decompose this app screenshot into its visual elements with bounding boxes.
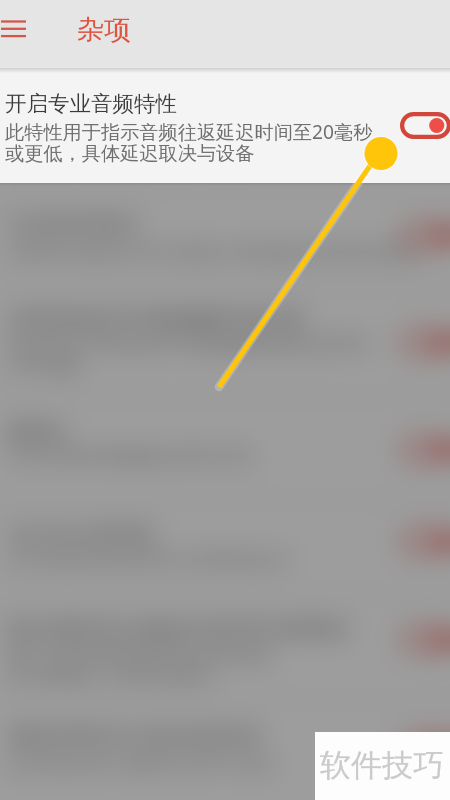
button[interactable]: Toggle [400, 113, 450, 140]
staticText: 软件技巧 [320, 746, 444, 785]
staticText: 显示当前屏幕刷新率的实时数值 并在屏幕左上角常驻显示 [5, 643, 274, 689]
button[interactable]: 开启专业音频特性 [0, 68, 450, 184]
button[interactable]: 摄像头 [0, 401, 450, 496]
button[interactable]: 强制启用GPU渲染加速特性 [0, 704, 450, 800]
staticText: 启用MIDI模式后可以通过USB连接支持MIDI设备 [5, 238, 419, 264]
button[interactable]: Toggle [400, 112, 450, 139]
staticText: 开启专业音频特性 [5, 90, 177, 117]
staticText: 开启专业音频特性 [5, 90, 177, 117]
button[interactable]: 显示刷新率以及触控采样率等参数值 [0, 599, 450, 696]
button[interactable]: Toggle [400, 436, 450, 463]
staticText: 此特性用于指示音频往返延迟时间至20毫秒 或更低，具体延迟取决与设备 [5, 118, 373, 166]
staticText: 摄像头 [5, 417, 70, 444]
button[interactable]: Toggle [400, 734, 450, 761]
button[interactable]: 开启MIDI模式 [0, 192, 450, 281]
button[interactable]: Menu [0, 0, 50, 68]
staticText: 杂项 [77, 13, 131, 47]
button[interactable]: Toggle [400, 626, 450, 653]
button[interactable]: Toggle [400, 329, 450, 356]
staticText: 此特性用于指示音频往返延迟时间至20毫秒 或更低，具体延迟取决与设备 [5, 118, 373, 166]
button[interactable]: 启用高级蓝牙音频编解码器设置 [0, 289, 450, 393]
button[interactable]: 允许后台高耗电 [0, 504, 450, 591]
button[interactable]: Toggle [400, 222, 450, 249]
button[interactable]: Toggle [400, 528, 450, 555]
staticText: 启用高级蓝牙音频编解码器设置 [5, 305, 306, 332]
button[interactable]: 开启专业音频特性 [0, 68, 450, 183]
staticText: 此设置允许更改蓝牙音频编解码器的采样率 与声道数 [5, 333, 370, 379]
